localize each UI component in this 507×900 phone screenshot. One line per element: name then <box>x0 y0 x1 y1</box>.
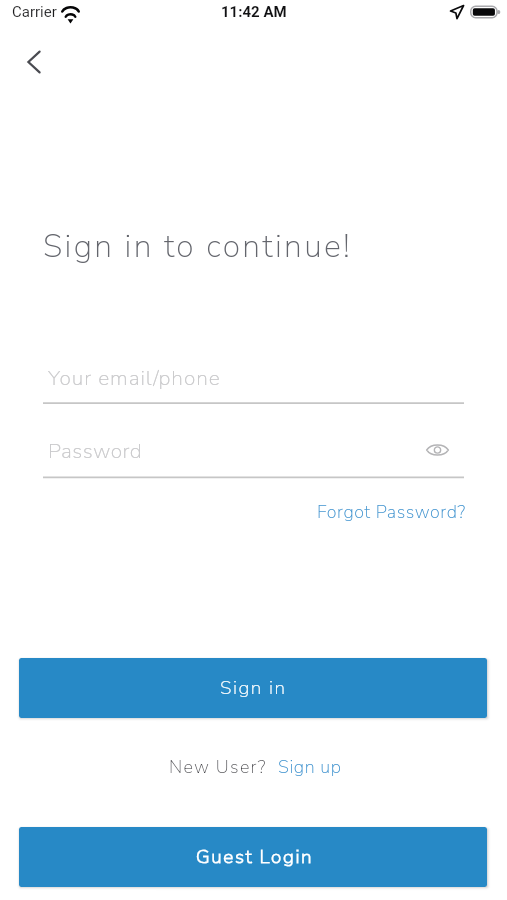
button[interactable]: Guest Login <box>19 827 487 887</box>
staticText: Password <box>48 437 143 466</box>
staticText: 11:42 AM <box>221 3 287 21</box>
staticText: Sign in to continue! <box>43 225 353 269</box>
button[interactable]: Back <box>8 40 52 84</box>
button[interactable]: Forgot Password? <box>311 496 472 529</box>
button[interactable]: Sign in <box>19 658 487 718</box>
staticText: Carrier <box>12 3 57 21</box>
staticText: Sign up <box>278 755 342 780</box>
button[interactable]: Show password <box>419 432 455 468</box>
staticText: Sign in <box>220 675 287 701</box>
staticText: Forgot Password? <box>317 500 466 525</box>
staticText: Your email/phone <box>48 364 221 393</box>
staticText: New User? <box>169 755 267 780</box>
button[interactable]: Sign up <box>278 755 342 780</box>
staticText: Guest Login <box>196 844 314 870</box>
